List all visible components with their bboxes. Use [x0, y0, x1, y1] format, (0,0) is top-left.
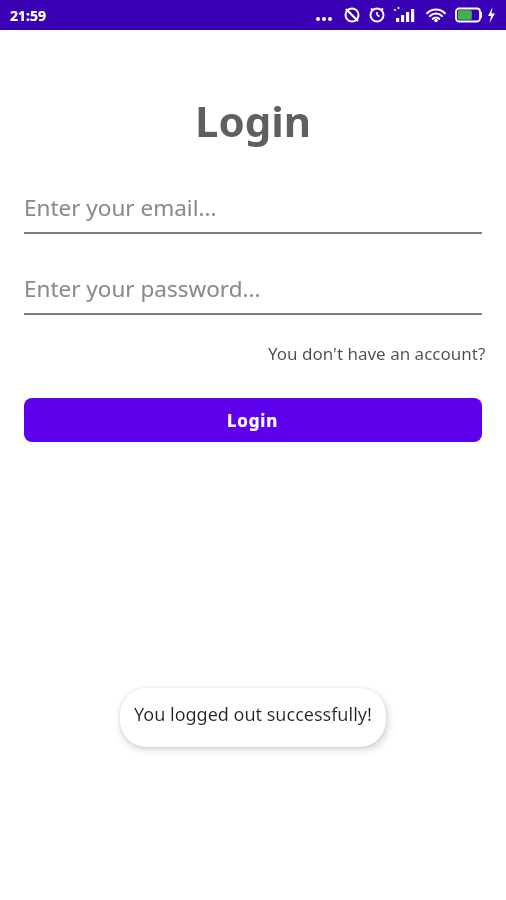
staticText: Enter your email...	[24, 192, 217, 223]
staticText: Login	[195, 92, 312, 149]
staticText: You don't have an account?	[268, 342, 486, 365]
staticText: You logged out successfully!	[134, 702, 372, 727]
button[interactable]: Login	[24, 398, 482, 442]
button[interactable]: You don't have an account?	[268, 342, 486, 365]
staticText: Enter your password...	[24, 273, 261, 304]
staticText: Login	[227, 409, 279, 432]
staticText: 21:59	[10, 6, 46, 25]
